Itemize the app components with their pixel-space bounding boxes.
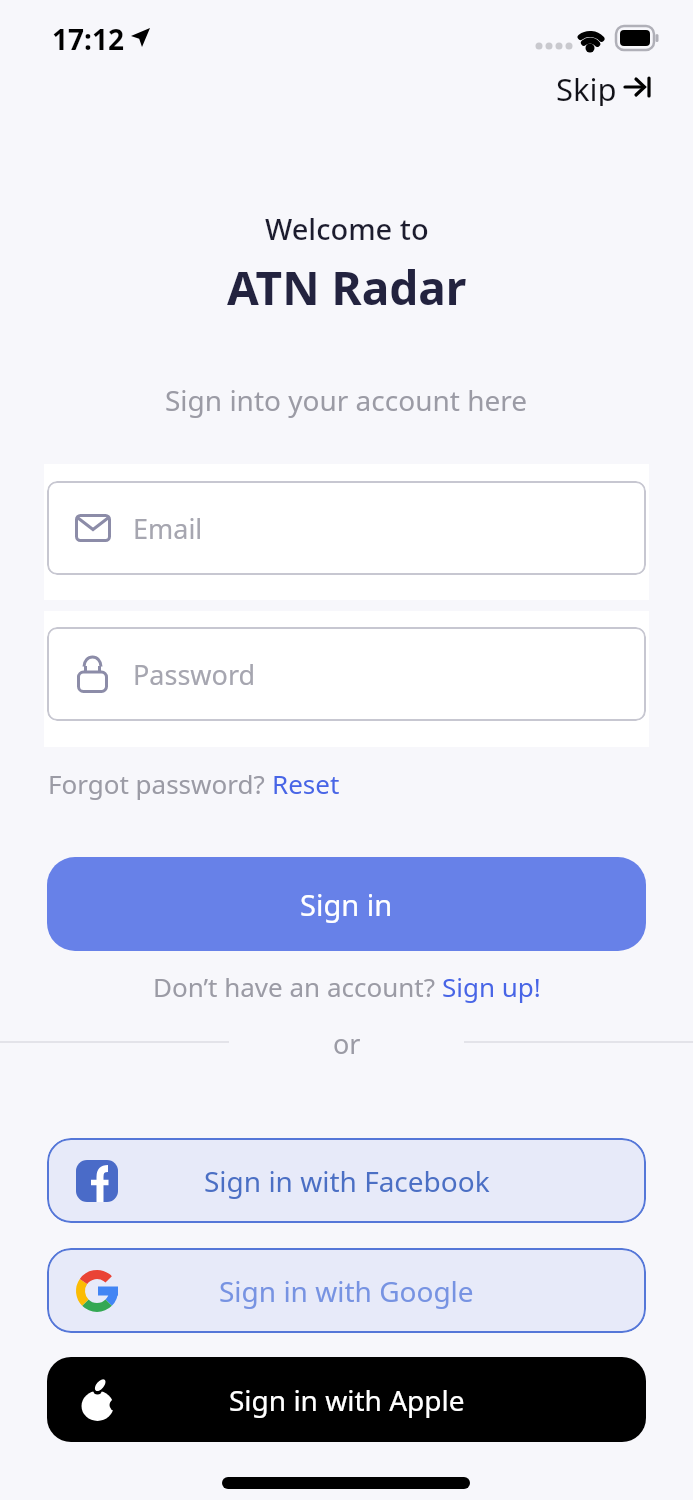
- staticText: ATN Radar: [227, 256, 467, 319]
- staticText: Sign in with Facebook: [204, 1162, 490, 1200]
- button[interactable]: Sign in with Google: [47, 1248, 646, 1333]
- staticText: Sign in with Google: [219, 1272, 474, 1310]
- button[interactable]: Sign in with Facebook: [47, 1138, 646, 1223]
- button[interactable]: Sign in with Apple: [47, 1357, 646, 1442]
- staticText: Forgot password?: [48, 766, 272, 801]
- staticText: Skip: [556, 68, 617, 106]
- staticText: 17:12: [52, 20, 124, 54]
- button[interactable]: Sign in: [47, 857, 646, 951]
- staticText: Welcome to: [265, 209, 429, 248]
- button[interactable]: Password: [47, 627, 646, 721]
- staticText: Sign into your account here: [165, 381, 528, 419]
- staticText: Don’t have an account?: [153, 969, 442, 1004]
- button[interactable]: Email: [47, 481, 646, 575]
- staticText: Sign up!: [442, 969, 541, 1004]
- staticText: Sign in: [300, 885, 393, 924]
- staticText: Sign in with Apple: [229, 1381, 465, 1419]
- button[interactable]: Skip: [556, 68, 651, 106]
- button[interactable]: Sign up!: [442, 969, 541, 1004]
- staticText: Password: [133, 656, 256, 693]
- staticText: Email: [133, 510, 203, 547]
- button[interactable]: Reset: [272, 766, 340, 801]
- staticText: Reset: [272, 766, 340, 801]
- staticText: or: [333, 1025, 361, 1062]
